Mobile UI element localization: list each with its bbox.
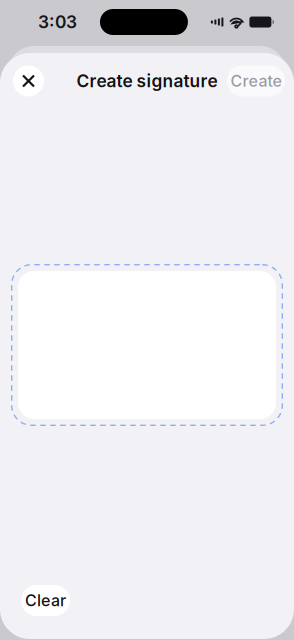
staticText: 3:03: [38, 12, 77, 32]
staticText: Create: [230, 72, 281, 90]
button[interactable]: Close: [13, 65, 44, 96]
staticText: Create signature: [76, 71, 217, 91]
button[interactable]: Create: [227, 65, 285, 96]
button[interactable]: Clear: [21, 585, 70, 616]
staticText: Clear: [25, 591, 66, 610]
